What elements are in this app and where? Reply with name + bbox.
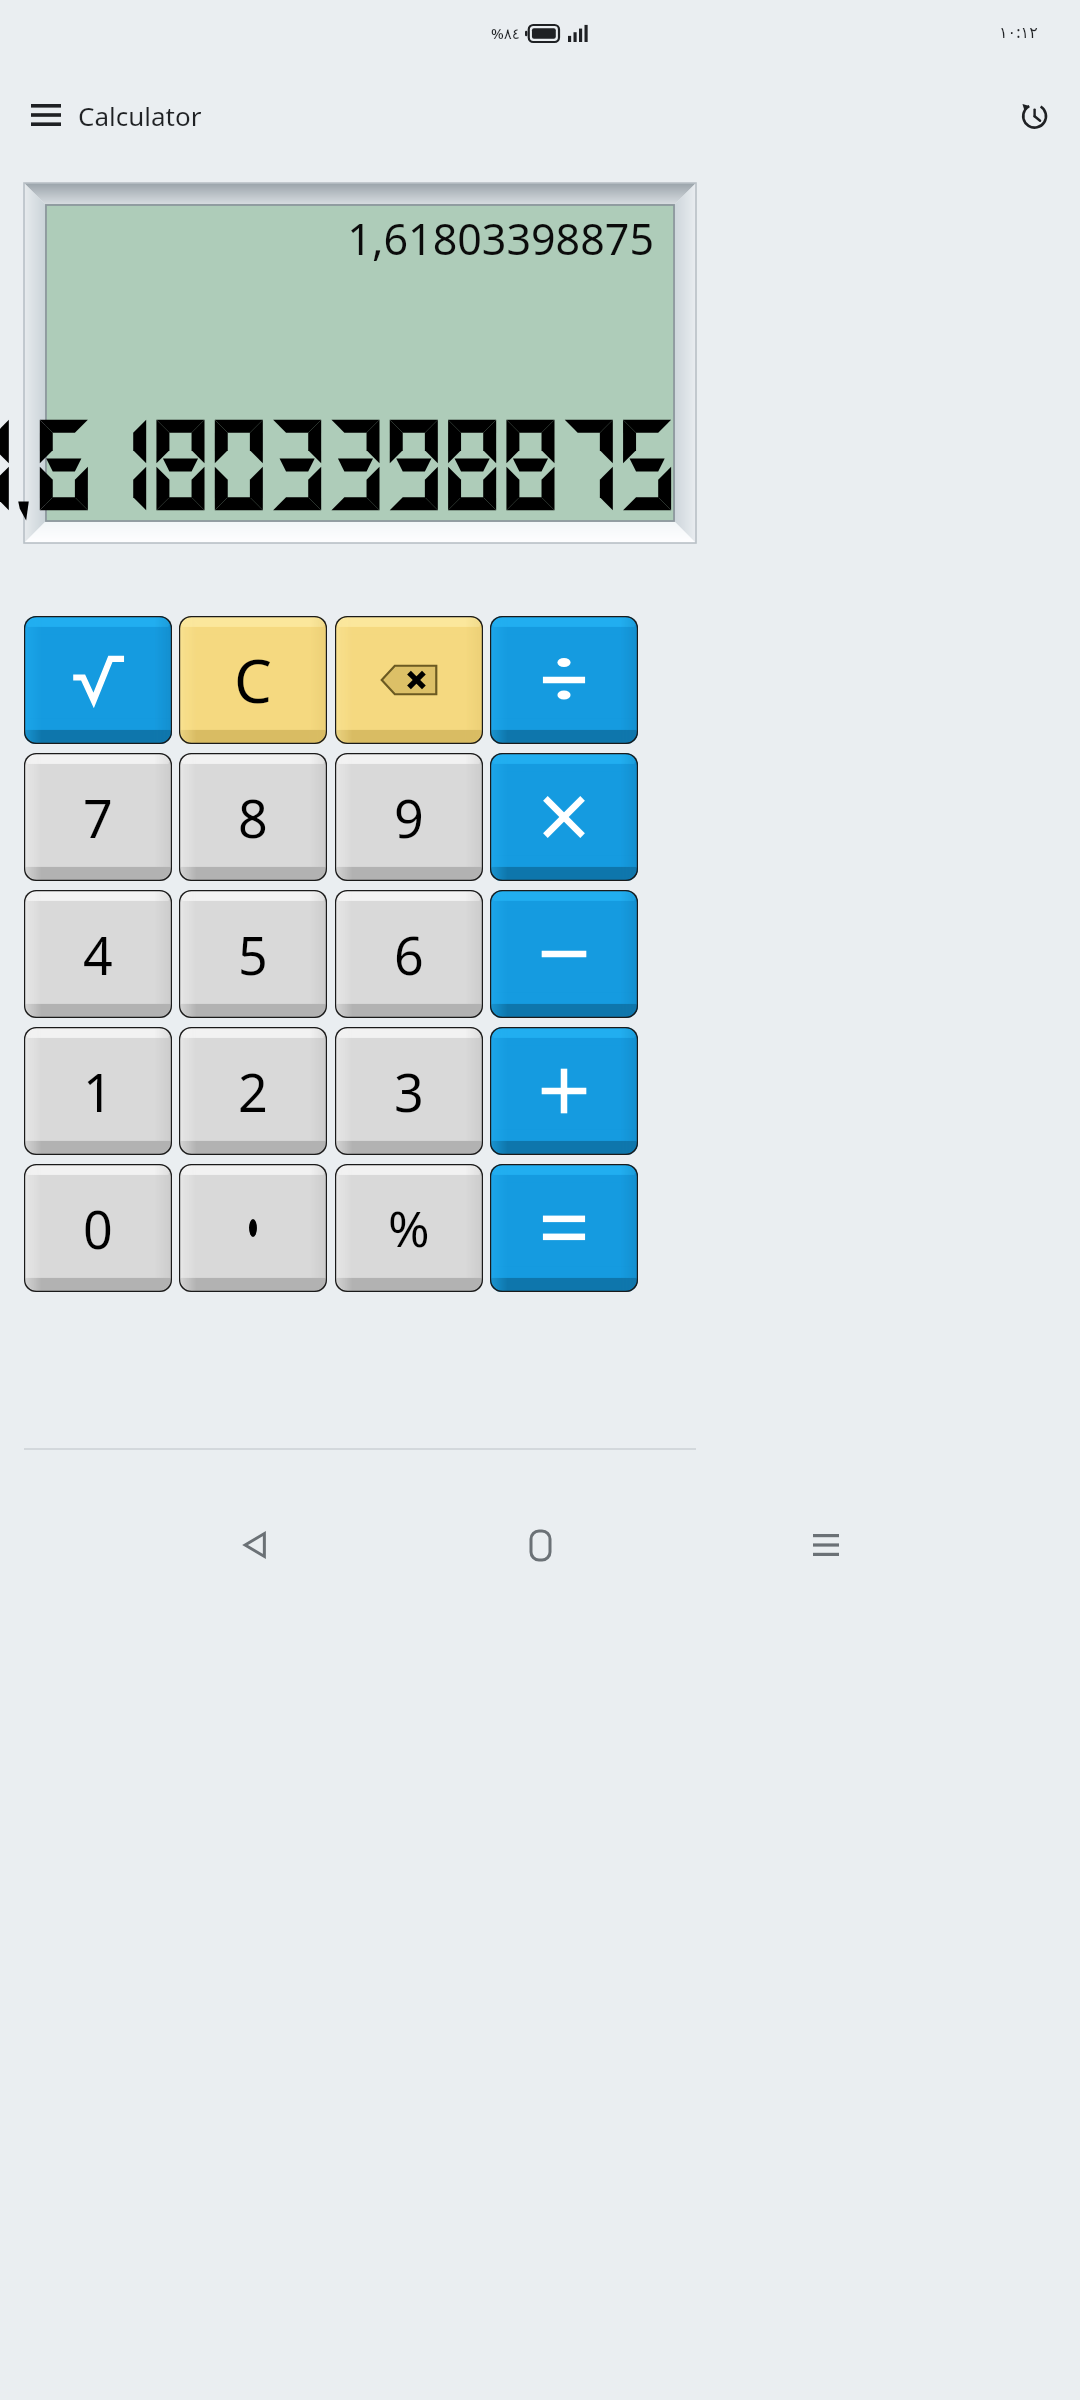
button[interactable]: 9 — [335, 753, 483, 881]
button[interactable]: 2 — [179, 1027, 327, 1155]
staticText: 8 — [238, 782, 268, 853]
staticText: 0 — [83, 1193, 113, 1264]
button[interactable]: History — [1008, 89, 1060, 141]
staticText: % — [388, 1194, 430, 1262]
button[interactable]: Equals — [490, 1164, 638, 1292]
button[interactable]: C — [179, 616, 327, 744]
button[interactable]: 0 — [24, 1164, 172, 1292]
button[interactable]: Back — [224, 1514, 286, 1576]
button[interactable]: Backspace — [335, 616, 483, 744]
staticText: 2 — [238, 1056, 268, 1127]
staticText: ١٠:١٢ — [999, 21, 1038, 43]
button[interactable]: 7 — [24, 753, 172, 881]
staticText: 9 — [394, 782, 424, 853]
button[interactable]: 1 — [24, 1027, 172, 1155]
staticText: 1 — [83, 1056, 113, 1127]
staticText: 5 — [238, 919, 268, 990]
button[interactable]: % — [335, 1164, 483, 1292]
button[interactable]: 4 — [24, 890, 172, 1018]
staticText: 1,61803398875 — [347, 209, 654, 268]
button[interactable]: 6 — [335, 890, 483, 1018]
button[interactable]: Menu — [20, 89, 72, 141]
button[interactable]: 8 — [179, 753, 327, 881]
button[interactable]: Recents — [795, 1514, 857, 1576]
button[interactable]: Square root — [24, 616, 172, 744]
staticText: C — [234, 639, 272, 721]
button[interactable]: Plus — [490, 1027, 638, 1155]
button[interactable]: 5 — [179, 890, 327, 1018]
staticText: Calculator — [78, 98, 202, 133]
staticText: 3 — [394, 1056, 424, 1127]
staticText: 7 — [83, 782, 113, 853]
button[interactable]: Decimal point — [179, 1164, 327, 1292]
button[interactable]: Multiply — [490, 753, 638, 881]
staticText: %٨٤ — [491, 23, 520, 43]
button[interactable]: Home — [509, 1514, 571, 1576]
button[interactable]: Minus — [490, 890, 638, 1018]
staticText: 4 — [83, 919, 113, 990]
staticText: 6 — [394, 919, 424, 990]
button[interactable]: Divide — [490, 616, 638, 744]
button[interactable]: 3 — [335, 1027, 483, 1155]
